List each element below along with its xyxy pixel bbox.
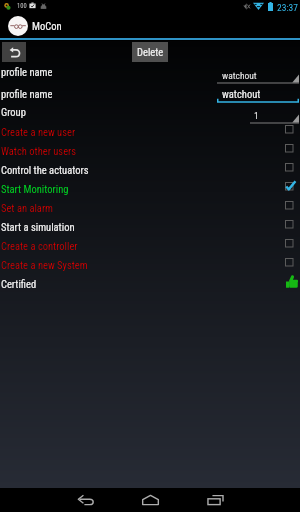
button[interactable]: Start a simulation bbox=[0, 214, 300, 233]
staticText: MoCon bbox=[32, 20, 62, 32]
staticText: Certified bbox=[1, 278, 37, 290]
staticText: Create a new user bbox=[1, 126, 76, 138]
staticText: Watch other users bbox=[1, 145, 77, 157]
staticText: Start a simulation bbox=[1, 221, 75, 233]
button[interactable]: Home bbox=[126, 488, 174, 512]
button[interactable]: watchout bbox=[217, 87, 299, 104]
button[interactable]: Certified bbox=[0, 271, 300, 290]
button[interactable]: MoCon logo bbox=[8, 16, 28, 36]
button[interactable]: Create a new System bbox=[0, 252, 300, 271]
button[interactable]: Control the actuators bbox=[0, 157, 300, 176]
button[interactable]: 1 bbox=[250, 107, 299, 125]
staticText: Delete bbox=[137, 46, 164, 58]
staticText: 23:37 bbox=[277, 2, 298, 13]
staticText: watchout bbox=[222, 88, 261, 100]
button[interactable]: Delete bbox=[132, 42, 168, 62]
button[interactable]: Create a new user bbox=[0, 119, 300, 138]
staticText: Start Monitoring bbox=[1, 183, 69, 195]
button[interactable]: watchout bbox=[217, 67, 299, 85]
staticText: Group bbox=[1, 106, 26, 118]
staticText: Create a new System bbox=[1, 259, 88, 271]
button[interactable]: Set an alarm bbox=[0, 195, 300, 214]
staticText: Create a controller bbox=[1, 240, 78, 252]
button[interactable]: Recent apps bbox=[191, 488, 239, 512]
button[interactable]: Create a controller bbox=[0, 233, 300, 252]
button[interactable]: Watch other users bbox=[0, 138, 300, 157]
staticText: profile name bbox=[1, 88, 53, 100]
button[interactable]: Undo bbox=[2, 42, 26, 62]
staticText: 100 bbox=[17, 2, 27, 10]
staticText: watchout bbox=[222, 70, 257, 81]
button[interactable]: Start Monitoring bbox=[0, 176, 300, 195]
staticText: profile name bbox=[1, 66, 53, 78]
staticText: Set an alarm bbox=[1, 202, 53, 214]
staticText: 1 bbox=[254, 110, 259, 121]
button[interactable]: Back bbox=[62, 488, 110, 512]
staticText: Control the actuators bbox=[1, 164, 89, 176]
